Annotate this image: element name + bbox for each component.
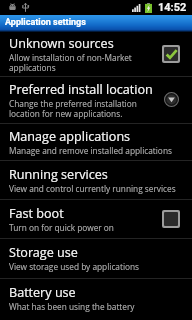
button[interactable]: Storage use	[0, 239, 192, 278]
button[interactable]: Open list	[162, 90, 180, 108]
staticText: Battery use	[9, 284, 76, 301]
staticText: Change the preferred installation locati…	[9, 98, 158, 119]
staticText: Turn on for quick power on	[9, 222, 114, 233]
staticText: Fast boot	[9, 205, 64, 222]
button[interactable]: Fast boot	[0, 200, 192, 238]
staticText: 14:52	[158, 1, 187, 14]
staticText: Storage use	[9, 244, 78, 261]
staticText: Manage applications	[9, 128, 131, 145]
button[interactable]: Checked	[164, 47, 178, 61]
staticText: Preferred install location	[9, 81, 153, 98]
button[interactable]: Unknown sources	[0, 32, 192, 76]
button[interactable]: Battery use	[0, 279, 192, 318]
staticText: What has been using the battery	[9, 301, 135, 312]
button[interactable]: Preferred install location	[0, 77, 192, 123]
staticText: Running services	[9, 166, 108, 183]
staticText: Application settings	[5, 17, 86, 28]
button[interactable]: Manage applications	[0, 124, 192, 160]
staticText: Unknown sources	[9, 35, 114, 52]
button[interactable]: Unchecked	[164, 212, 178, 226]
staticText: View and control currently running servi…	[9, 183, 176, 194]
staticText: Allow installation of non-Market applica…	[9, 52, 158, 73]
staticText: Manage and remove installed applications	[9, 145, 172, 156]
button[interactable]: Running services	[0, 161, 192, 199]
staticText: View storage used by applications	[9, 261, 140, 272]
